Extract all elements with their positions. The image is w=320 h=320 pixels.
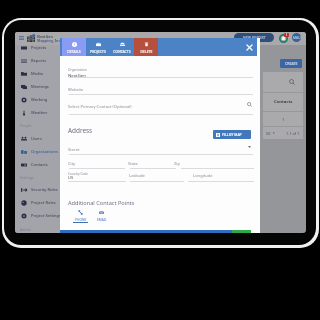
staticText: FILL BY MAP (222, 132, 242, 137)
staticText: Zip (174, 161, 180, 167)
staticText: Longitude (193, 173, 213, 179)
staticText: Projects (31, 45, 47, 50)
staticText: MAU (293, 35, 301, 40)
staticText: City (68, 161, 76, 167)
button[interactable]: CONTACTS (110, 38, 134, 56)
staticText: Project Settings (31, 213, 61, 218)
button[interactable]: Reports (15, 54, 61, 67)
button[interactable]: Working (15, 93, 61, 106)
button[interactable]: PROJECTS (86, 38, 110, 56)
staticText: State (128, 161, 138, 167)
staticText: Contacts (31, 162, 48, 167)
button[interactable]: Media (15, 67, 61, 80)
staticText: PHONE (75, 217, 87, 221)
staticText: 50 (266, 131, 271, 136)
button[interactable]: PHONE (73, 210, 88, 223)
staticText: 1 (286, 33, 288, 37)
button[interactable]: Weather (15, 106, 61, 119)
staticText: Media (31, 71, 43, 76)
staticText: NextGen (68, 72, 86, 78)
button[interactable]: Project Settings (15, 209, 61, 222)
staticText: Users (31, 136, 42, 141)
staticText: NEW REPORT (243, 35, 266, 40)
staticText: 1 (282, 117, 285, 122)
staticText: 1-1 of 1 (286, 131, 300, 136)
button[interactable]: EMAIL (94, 210, 109, 223)
button[interactable]: Meetings (15, 80, 61, 93)
staticText: Street (68, 147, 80, 153)
staticText: Mapping, Inc (37, 38, 61, 43)
button[interactable]: NEW REPORT (234, 33, 274, 42)
staticText: Country Code (68, 172, 88, 176)
staticText: PROJECTS (90, 49, 106, 53)
button[interactable]: FILL BY MAP (213, 130, 251, 139)
staticText: People (20, 123, 32, 128)
staticText: EMAIL (97, 217, 107, 221)
staticText: Website (68, 87, 84, 93)
staticText: Contacts (274, 99, 293, 105)
staticText: Organization (68, 68, 87, 72)
button[interactable]: Close dialog (244, 42, 254, 52)
staticText: Organizations (31, 149, 58, 154)
button[interactable]: MAU (292, 33, 301, 42)
staticText: Admin (20, 227, 32, 232)
staticText: Reports (31, 58, 46, 63)
button[interactable]: Contacts (15, 158, 61, 171)
staticText: Address (68, 126, 93, 135)
button[interactable]: Open navigation menu (19, 36, 24, 40)
button[interactable]: Projects (15, 41, 61, 54)
button[interactable]: CREATE (280, 59, 302, 68)
staticText: Project Roles (31, 200, 56, 205)
staticText: DELETE (140, 49, 153, 53)
button[interactable]: DELETE (134, 38, 158, 56)
staticText: Additional Contact Points (68, 199, 135, 207)
staticText: Settings (20, 175, 34, 180)
staticText: CONTACTS (113, 49, 131, 53)
staticText: Latitude (129, 173, 145, 179)
button[interactable]: Organizations (15, 145, 61, 158)
staticText: Security Roles (31, 187, 58, 192)
button[interactable]: Users (15, 132, 61, 145)
staticText: Weather (31, 110, 48, 115)
staticText: DETAILS (67, 49, 81, 53)
staticText: CREATE (285, 61, 298, 66)
staticText: NextGen (37, 34, 53, 39)
staticText: US (68, 175, 74, 180)
button[interactable]: DETAILS (62, 38, 86, 56)
button[interactable]: Project Roles (15, 196, 61, 209)
button[interactable]: Security Roles (15, 183, 61, 196)
staticText: Select Primary Contact (Optional) (68, 104, 132, 110)
staticText: Working (31, 97, 48, 102)
button[interactable]: Notifications (279, 34, 288, 43)
staticText: ▾ (273, 131, 275, 135)
staticText: Meetings (31, 84, 49, 89)
